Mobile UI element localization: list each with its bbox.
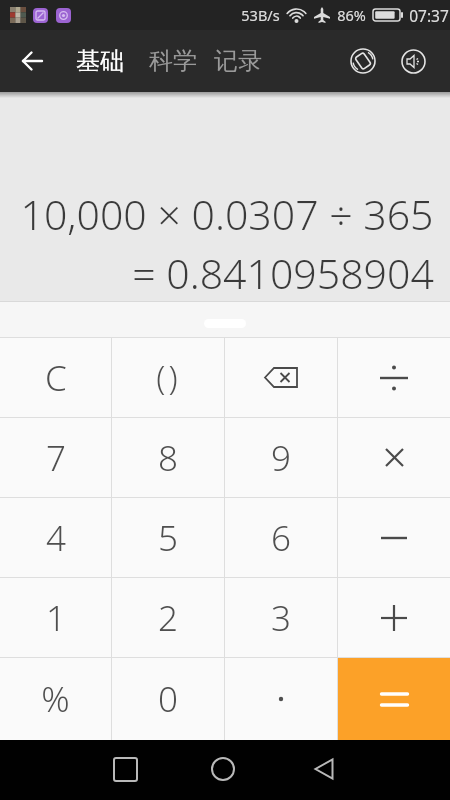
button[interactable]: C: [0, 338, 111, 417]
button[interactable]: [225, 658, 337, 740]
staticText: 9: [271, 434, 291, 482]
button[interactable]: [225, 338, 337, 417]
button[interactable]: [300, 745, 348, 793]
button[interactable]: %: [0, 658, 111, 740]
staticText: 1: [46, 594, 66, 642]
button[interactable]: [338, 658, 450, 740]
button[interactable]: 8: [112, 418, 224, 497]
button[interactable]: 基础: [76, 46, 124, 76]
button[interactable]: [338, 498, 450, 577]
staticText: = 0.8410958904: [132, 245, 434, 301]
staticText: 0: [158, 675, 178, 723]
staticText: 2: [158, 594, 178, 642]
staticText: 86%: [337, 5, 366, 25]
staticText: 07:37: [409, 5, 449, 26]
button[interactable]: 0: [112, 658, 224, 740]
button[interactable]: [5, 30, 59, 92]
staticText: 4: [46, 514, 66, 562]
staticText: 53B/s: [241, 5, 280, 25]
staticText: 记录: [214, 46, 262, 76]
staticText: 8: [158, 434, 178, 482]
staticText: %: [41, 675, 70, 723]
staticText: 10,000 × 0.0307 ÷ 365: [20, 186, 434, 242]
staticText: 5: [158, 514, 178, 562]
button[interactable]: [199, 745, 247, 793]
staticText: C: [45, 354, 67, 402]
button[interactable]: 5: [112, 498, 224, 577]
button[interactable]: 6: [225, 498, 337, 577]
staticText: 3: [271, 594, 291, 642]
button[interactable]: 1: [0, 578, 111, 657]
button[interactable]: [343, 41, 383, 81]
button[interactable]: [393, 41, 433, 81]
button[interactable]: 3: [225, 578, 337, 657]
button[interactable]: 科学: [149, 46, 197, 76]
staticText: 7: [46, 434, 66, 482]
button[interactable]: 9: [225, 418, 337, 497]
staticText: 6: [271, 514, 291, 562]
button[interactable]: [338, 418, 450, 497]
button[interactable]: (): [112, 338, 224, 417]
button[interactable]: [338, 578, 450, 657]
button[interactable]: 7: [0, 418, 111, 497]
button[interactable]: [338, 338, 450, 417]
staticText: (): [156, 355, 181, 400]
button[interactable]: 2: [112, 578, 224, 657]
button[interactable]: [101, 745, 149, 793]
button[interactable]: 记录: [214, 46, 262, 76]
staticText: 科学: [149, 46, 197, 76]
button[interactable]: 4: [0, 498, 111, 577]
staticText: 基础: [76, 46, 124, 76]
